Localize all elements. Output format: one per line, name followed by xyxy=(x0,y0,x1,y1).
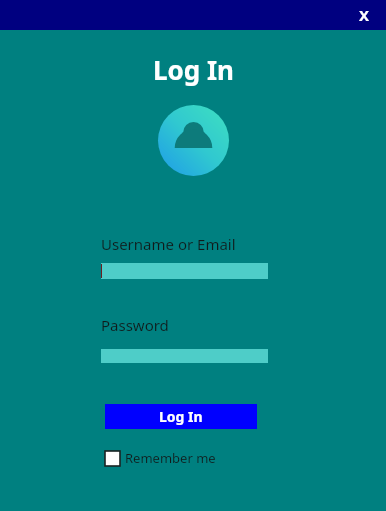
staticText: Password xyxy=(101,315,169,335)
button[interactable]: Close xyxy=(352,3,376,27)
staticText: X xyxy=(359,5,370,25)
button[interactable] xyxy=(101,263,268,279)
button[interactable]: Remember me xyxy=(105,449,216,467)
staticText: Log In xyxy=(159,407,203,426)
staticText: Log In xyxy=(153,52,234,87)
staticText: Remember me xyxy=(125,449,216,467)
button[interactable]: Log In xyxy=(105,404,257,429)
staticText: Username or Email xyxy=(101,234,236,254)
